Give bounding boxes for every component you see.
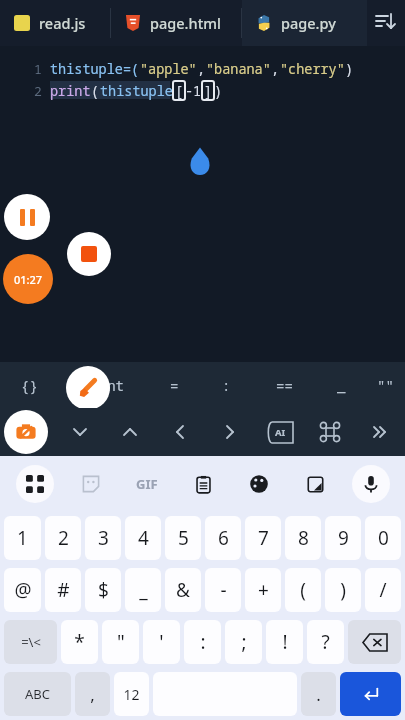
button[interactable]: Themes: [231, 456, 287, 512]
staticText: page.py: [281, 13, 336, 33]
staticText: "cherry": [280, 60, 345, 78]
button[interactable]: 5: [165, 516, 201, 560]
staticText: $: [98, 577, 109, 603]
staticText: =\<: [21, 633, 41, 651]
button[interactable]: :: [200, 362, 252, 408]
staticText: ,: [271, 60, 280, 78]
staticText: 1: [34, 60, 42, 78]
staticText: 01:27: [14, 272, 43, 287]
staticText: ]: [204, 82, 213, 100]
button[interactable]: .: [301, 672, 336, 716]
button[interactable]: &: [165, 568, 201, 612]
button[interactable]: #: [45, 568, 81, 612]
staticText: ?: [321, 629, 330, 655]
staticText: thistuple=(: [50, 60, 140, 78]
button[interactable]: {}: [0, 362, 58, 408]
button[interactable]: ": [102, 620, 139, 664]
button[interactable]: 9: [325, 516, 361, 560]
staticText: (: [300, 577, 306, 603]
button[interactable]: ;: [225, 620, 262, 664]
button[interactable]: Enter: [340, 672, 401, 716]
button[interactable]: 12: [114, 672, 149, 716]
button[interactable]: Brush: [66, 366, 110, 410]
staticText: 2: [34, 82, 42, 100]
button[interactable]: "": [366, 362, 405, 408]
button[interactable]: ABC: [4, 672, 71, 716]
staticText: *: [74, 629, 85, 655]
staticText: ": [117, 629, 125, 655]
button[interactable]: Pause: [4, 194, 50, 240]
button[interactable]: @: [4, 568, 41, 612]
staticText: _: [139, 577, 148, 603]
staticText: "banana": [206, 60, 271, 78]
button[interactable]: Resize: [287, 456, 343, 512]
staticText: =: [170, 376, 179, 395]
button[interactable]: :: [184, 620, 221, 664]
button[interactable]: page.py: [242, 0, 367, 46]
button[interactable]: Stickers: [63, 456, 119, 512]
button[interactable]: ': [143, 620, 180, 664]
button[interactable]: 8: [285, 516, 321, 560]
button[interactable]: _: [316, 362, 366, 408]
button[interactable]: Sort: [367, 0, 405, 46]
staticText: ': [159, 629, 164, 655]
button[interactable]: 3: [85, 516, 121, 560]
staticText: :: [222, 376, 231, 395]
button[interactable]: Up: [55, 408, 105, 456]
button[interactable]: Next: [205, 408, 255, 456]
button[interactable]: More: [355, 408, 405, 456]
button[interactable]: Voice input: [343, 456, 399, 512]
button[interactable]: +: [245, 568, 281, 612]
button[interactable]: $: [85, 568, 121, 612]
button[interactable]: page.html: [111, 0, 241, 46]
button[interactable]: =: [148, 362, 200, 408]
staticText: page.html: [150, 13, 221, 33]
staticText: @: [14, 577, 32, 603]
button[interactable]: -: [205, 568, 241, 612]
button[interactable]: 1: [4, 516, 41, 560]
staticText: "apple": [140, 60, 197, 78]
button[interactable]: 4: [125, 516, 161, 560]
staticText: print: [50, 82, 91, 100]
button[interactable]: AI: [255, 408, 305, 456]
button[interactable]: !: [266, 620, 303, 664]
button[interactable]: 01:27: [3, 254, 53, 304]
button[interactable]: Screenshot off: [4, 410, 48, 454]
staticText: -1: [185, 82, 202, 100]
button[interactable]: ): [325, 568, 361, 612]
button[interactable]: 7: [245, 516, 281, 560]
button[interactable]: Backspace: [348, 620, 401, 664]
staticText: 6: [218, 525, 229, 551]
button[interactable]: =\<: [4, 620, 57, 664]
button[interactable]: read.js: [0, 0, 110, 46]
staticText: ): [214, 82, 223, 100]
button[interactable]: Down: [105, 408, 155, 456]
button[interactable]: 0: [365, 516, 401, 560]
staticText: 4: [138, 525, 149, 551]
button[interactable]: ,: [75, 672, 110, 716]
staticText: ABC: [25, 685, 50, 703]
button[interactable]: *: [61, 620, 98, 664]
button[interactable]: /: [365, 568, 401, 612]
button[interactable]: Command: [305, 408, 355, 456]
button[interactable]: Stop: [67, 232, 111, 276]
button[interactable]: 6: [205, 516, 241, 560]
button[interactable]: Clipboard: [175, 456, 231, 512]
staticText: read.js: [39, 13, 86, 33]
staticText: +: [258, 577, 269, 603]
button[interactable]: (: [285, 568, 321, 612]
button[interactable]: ==: [252, 362, 316, 408]
button[interactable]: _: [125, 568, 161, 612]
staticText: 1: [17, 525, 28, 551]
button[interactable]: GIF: [119, 456, 175, 512]
button[interactable]: print: [58, 362, 148, 408]
button[interactable]: ?: [307, 620, 344, 664]
staticText: .: [316, 683, 321, 706]
button[interactable]: 2: [45, 516, 81, 560]
staticText: ): [340, 577, 346, 603]
button[interactable]: Previous: [155, 408, 205, 456]
button[interactable]: Apps: [6, 456, 63, 512]
staticText: (: [91, 82, 100, 100]
